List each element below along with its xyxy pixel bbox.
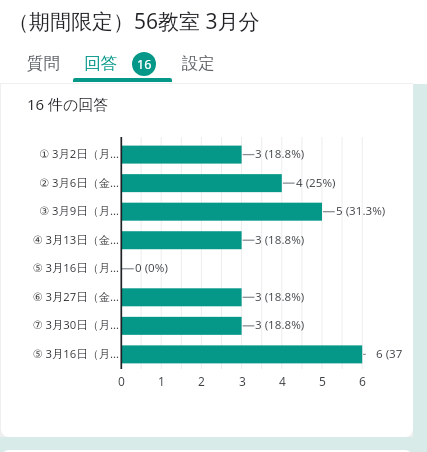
- button[interactable]: 設定: [170, 45, 227, 81]
- staticText: 回答: [84, 53, 117, 74]
- staticText: 5 (31.3%): [336, 203, 386, 219]
- staticText: 16 件の回答: [27, 94, 109, 114]
- staticText: 6 (37: [376, 346, 403, 362]
- staticText: 3 (18.8%): [255, 317, 305, 333]
- staticText: ⑦ 3月30日（月…: [32, 317, 119, 332]
- staticText: 16: [137, 56, 152, 73]
- staticText: 設定: [182, 53, 215, 74]
- staticText: （期間限定）56教室 3月分: [8, 7, 260, 36]
- staticText: 2: [198, 373, 205, 389]
- staticText: 4 (25%): [296, 175, 336, 191]
- staticText: 6: [359, 373, 366, 389]
- staticText: ① 3月2日（月…: [38, 146, 119, 161]
- staticText: 0 (0%): [135, 260, 168, 276]
- staticText: 3 (18.8%): [255, 146, 305, 162]
- staticText: ④ 3月13日（金…: [32, 232, 119, 247]
- staticText: ⑤ 3月16日（月…: [32, 260, 119, 275]
- staticText: 5: [319, 373, 326, 389]
- staticText: 1: [158, 373, 165, 389]
- button[interactable]: 回答: [72, 45, 172, 81]
- staticText: 3 (18.8%): [255, 289, 305, 305]
- button[interactable]: 質問: [14, 45, 72, 81]
- staticText: ② 3月6日（金…: [38, 175, 119, 190]
- staticText: ③ 3月9日（月…: [38, 203, 119, 218]
- staticText: 質問: [27, 53, 60, 74]
- staticText: ⑥ 3月27日（金…: [32, 289, 119, 304]
- staticText: 0: [118, 373, 125, 389]
- staticText: 3: [239, 373, 246, 389]
- staticText: 3 (18.8%): [255, 232, 305, 248]
- staticText: 4: [279, 373, 286, 389]
- staticText: ⑤ 3月16日（月…: [32, 346, 119, 361]
